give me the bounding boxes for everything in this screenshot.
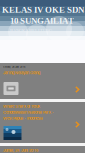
staticText: West Papua - Indonesia xyxy=(3,116,43,121)
staticText: BANGKA BELITUNG xyxy=(10,28,52,33)
button[interactable]: Whale Shark di Teluk xyxy=(0,102,85,143)
staticText: Cenderawasih National Park - xyxy=(3,110,54,115)
button[interactable]: Selasa, 28 Juni 2016 xyxy=(0,63,85,99)
staticText: Jaring Nelayan Orang xyxy=(3,70,40,75)
staticText: KELAS IV OKE SDN xyxy=(2,5,84,15)
staticText: Jumat, 24 Juni 2016 xyxy=(3,148,38,153)
staticText: Whale Shark di Teluk xyxy=(3,104,40,109)
button[interactable]: Jumat, 24 Juni 2016 xyxy=(0,146,85,153)
staticText: Selasa, 28 Juni 2016 xyxy=(3,65,25,68)
staticText: 10 SUNGAILIAT xyxy=(10,16,74,26)
